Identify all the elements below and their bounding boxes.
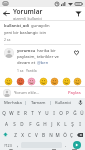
button[interactable]: B xyxy=(40,129,47,140)
button[interactable]: Ö xyxy=(61,129,68,140)
staticText: J xyxy=(51,121,53,127)
staticText: paylasim, tebrikler ve xyxy=(17,54,59,60)
button[interactable]: K xyxy=(55,118,62,129)
staticText: ?123 xyxy=(4,143,12,148)
button[interactable]: Emoji xyxy=(50,77,58,85)
button[interactable]: H xyxy=(41,118,48,129)
staticText: 1 sa Yanitla xyxy=(17,68,37,73)
button[interactable]: Ğ xyxy=(71,107,78,118)
staticText: Ö xyxy=(63,132,67,138)
button[interactable]: Emoji xyxy=(62,77,70,85)
button[interactable]: Ş xyxy=(69,118,76,129)
button[interactable]: L xyxy=(62,118,69,129)
staticText: V xyxy=(35,132,38,138)
button[interactable]: Back xyxy=(0,7,13,20)
staticText: gizemli_kullanici xyxy=(13,16,43,20)
button[interactable]: Emoji xyxy=(16,77,24,85)
staticText: P xyxy=(66,110,69,116)
staticText: kullanici_adi xyxy=(4,23,31,29)
button[interactable]: Like xyxy=(72,48,81,57)
staticText: G xyxy=(36,121,40,127)
staticText: Yorum ekle... xyxy=(14,90,40,96)
staticText: O xyxy=(59,110,63,116)
button[interactable]: Yorum ekle... xyxy=(14,90,67,96)
staticText: Ü xyxy=(80,110,84,116)
button[interactable]: O xyxy=(57,107,64,118)
staticText: B xyxy=(42,132,45,138)
button[interactable]: Enter xyxy=(69,140,84,150)
staticText: Paylas xyxy=(68,90,81,96)
button[interactable]: kullanici_adi xyxy=(0,21,85,44)
staticText: Ş xyxy=(71,121,74,127)
staticText: C xyxy=(28,132,31,138)
button[interactable]: A xyxy=(2,118,10,129)
button[interactable]: yorumcu xyxy=(0,45,85,75)
button[interactable]: V xyxy=(33,129,40,140)
button[interactable]: U xyxy=(43,107,50,118)
staticText: Y xyxy=(38,110,41,116)
staticText: A xyxy=(5,121,8,127)
staticText: U xyxy=(45,110,49,116)
staticText: W xyxy=(9,110,14,116)
button[interactable]: Emoji xyxy=(4,77,12,85)
staticText: , xyxy=(17,142,19,149)
button[interactable]: F xyxy=(26,118,34,129)
button[interactable]: X xyxy=(19,129,26,140)
staticText: F xyxy=(29,121,32,127)
staticText: H xyxy=(43,121,47,127)
button[interactable]: P xyxy=(64,107,71,118)
button[interactable]: N xyxy=(47,129,54,140)
button[interactable]: Z xyxy=(11,129,19,140)
button[interactable]: I xyxy=(76,118,83,129)
staticText: Z xyxy=(14,132,17,138)
button[interactable]: Merhaba xyxy=(0,98,26,107)
button[interactable]: R xyxy=(22,107,29,118)
button[interactable]: D xyxy=(18,118,26,129)
button[interactable]: T xyxy=(29,107,36,118)
staticText: . xyxy=(65,142,67,149)
button[interactable]: S xyxy=(10,118,18,129)
staticText: gunaydin xyxy=(31,23,50,29)
button[interactable]: Shift xyxy=(0,129,11,140)
staticText: E xyxy=(17,110,20,116)
staticText: N xyxy=(49,132,53,138)
button[interactable]: Send xyxy=(72,7,85,20)
button[interactable]: I xyxy=(50,107,57,118)
button[interactable]: Emoji xyxy=(73,77,81,85)
staticText: Ç xyxy=(70,132,73,138)
button[interactable]: M xyxy=(54,129,61,140)
button[interactable]: Emoji xyxy=(27,77,35,85)
button[interactable]: Ü xyxy=(78,107,85,118)
button[interactable]: Backspace xyxy=(75,129,85,140)
button[interactable]: Tamam xyxy=(26,98,51,107)
staticText: Tamam xyxy=(31,100,46,106)
staticText: Merhaba xyxy=(4,100,22,106)
staticText: yorumcu xyxy=(17,48,37,54)
button[interactable]: Y xyxy=(36,107,43,118)
staticText: @ben xyxy=(37,60,49,66)
button[interactable]: ?123 xyxy=(1,140,14,150)
button[interactable]: W xyxy=(8,107,15,118)
button[interactable]: Paylas xyxy=(67,89,82,97)
staticText: yeni bir baslangic icin xyxy=(4,30,47,36)
staticText: Kullanici xyxy=(55,100,72,106)
button[interactable]: J xyxy=(48,118,55,129)
button[interactable]: Q xyxy=(0,107,8,118)
staticText: T xyxy=(31,110,34,116)
staticText: Yorumlar xyxy=(13,7,43,16)
button[interactable]: . xyxy=(62,140,69,150)
staticText: X xyxy=(21,132,24,138)
button[interactable]: , xyxy=(14,140,21,150)
staticText: Ğ xyxy=(73,110,77,116)
button[interactable]: Ç xyxy=(68,129,75,140)
staticText: 2 sa xyxy=(4,37,11,42)
button[interactable]: E xyxy=(15,107,22,118)
button[interactable]: Kullanici xyxy=(51,98,76,107)
staticText: Q xyxy=(2,110,6,116)
button[interactable]: Emoji xyxy=(39,77,47,85)
button[interactable]: G xyxy=(34,118,41,129)
button[interactable]: C xyxy=(26,129,33,140)
button[interactable]: Voice input xyxy=(76,98,85,107)
staticText: S xyxy=(13,121,16,127)
